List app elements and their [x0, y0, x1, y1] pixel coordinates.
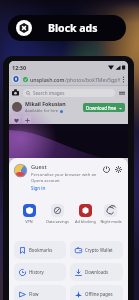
button[interactable]: History [14, 263, 66, 281]
staticText: Offline pages [85, 291, 113, 297]
button[interactable]: Exit [102, 165, 111, 174]
staticText: /photos/bokTMev5gpY [65, 76, 121, 83]
button[interactable] [12, 89, 19, 96]
staticText: VPN [25, 219, 33, 224]
button[interactable]: Crypto Wallet [70, 241, 123, 259]
staticText: Downloads [85, 269, 108, 275]
staticText: Ad blocking [75, 219, 96, 224]
button[interactable]: Search images [23, 89, 115, 97]
staticText: Bookmarks [29, 247, 53, 253]
staticText: Block ads [48, 21, 98, 35]
staticText: History [29, 269, 44, 275]
button[interactable]: Ad blocking [71, 204, 99, 224]
button[interactable]: Sign in [31, 185, 46, 191]
staticText: Available for hire [25, 108, 59, 114]
staticText: Search images [33, 90, 65, 96]
staticText: Flow [29, 291, 39, 297]
button[interactable]: Night mode [99, 204, 122, 224]
button[interactable]: Data savings [43, 204, 71, 224]
button[interactable]: Opera menu [12, 75, 20, 83]
staticText: Opera account [31, 178, 60, 184]
staticText: Night mode [100, 219, 122, 224]
button[interactable]: Block ads [8, 15, 126, 41]
button[interactable]: Flow [14, 285, 66, 300]
button[interactable]: Download free [83, 103, 125, 112]
staticText: unsplash.com [30, 76, 65, 83]
staticText: Guest [31, 163, 47, 171]
staticText: Mikail Fokusian [25, 100, 66, 107]
button[interactable]: Like [12, 116, 20, 124]
staticText: Crypto Wallet [85, 247, 113, 253]
button[interactable]: Downloads [70, 263, 123, 281]
button[interactable]: Menu [119, 90, 125, 96]
button[interactable]: Offline pages [70, 285, 123, 300]
staticText: 12:30 [12, 64, 27, 71]
staticText: Personalise your browser with an [31, 172, 97, 178]
button[interactable]: More options [121, 75, 126, 83]
staticText: Download free [86, 105, 117, 111]
button[interactable]: VPN [15, 204, 43, 224]
staticText: Sign in [31, 185, 46, 191]
button[interactable]: Bookmarks [14, 241, 66, 259]
button[interactable]: Settings [114, 165, 123, 174]
button[interactable]: Add to collection [23, 116, 31, 124]
staticText: Data savings [46, 219, 69, 224]
